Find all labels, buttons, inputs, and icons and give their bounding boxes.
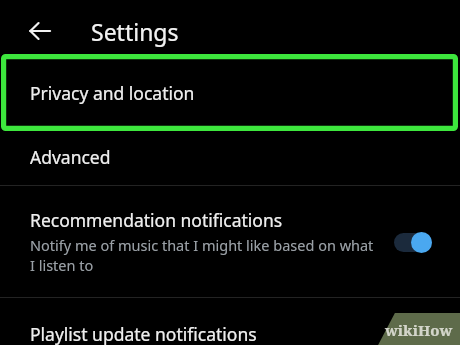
staticText: Settings	[91, 16, 179, 47]
button[interactable]: Advanced	[0, 129, 460, 185]
staticText: Advanced	[30, 145, 111, 169]
staticText: Notify me of music that I might like bas…	[30, 235, 382, 275]
staticText: Privacy and location	[30, 81, 195, 105]
button[interactable]: Privacy and location	[0, 56, 460, 129]
button[interactable]: Recommendation notifications	[0, 186, 460, 297]
staticText: Playlist update notifications	[30, 322, 257, 345]
staticText: Recommendation notifications	[30, 208, 283, 232]
button[interactable]: Recommendation notifications toggle	[392, 227, 438, 257]
staticText: wikiHow	[385, 320, 453, 340]
button[interactable]: Back	[20, 11, 60, 51]
button[interactable]: Playlist update notifications	[0, 298, 460, 345]
